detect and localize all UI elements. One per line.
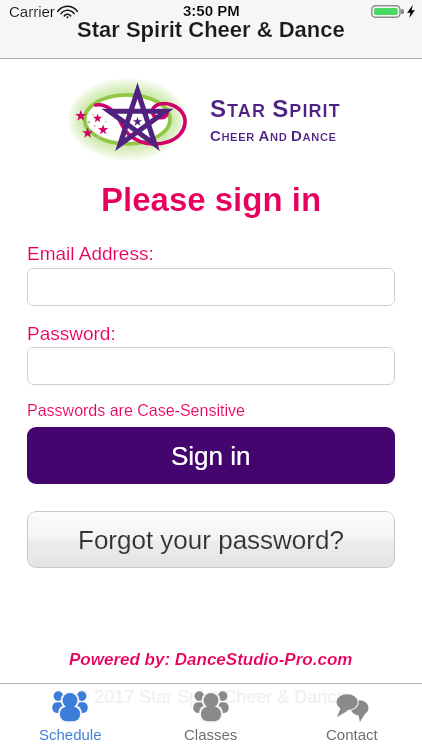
staticText: Email Address:	[27, 243, 154, 264]
button[interactable]: Schedule	[0, 684, 140, 750]
staticText: STAR SPIRIT	[210, 95, 341, 122]
button[interactable]: Text input	[27, 347, 395, 385]
button[interactable]: Text input	[27, 268, 395, 306]
staticText: Powered by: DanceStudio-Pro.com	[69, 650, 353, 669]
staticText: CHEER AND DANCE	[210, 127, 337, 144]
staticText: © 2017 Star Spirit Cheer & Dance	[76, 687, 347, 707]
staticText: Contact	[326, 726, 378, 743]
staticText: Forgot your password?	[78, 525, 344, 554]
staticText: Schedule	[39, 726, 102, 743]
staticText: Star Spirit Cheer & Dance	[77, 17, 345, 42]
button[interactable]: Sign in	[27, 427, 395, 484]
staticText: Sign in	[171, 441, 251, 470]
staticText: Passwords are Case-Sensitive	[27, 402, 245, 420]
staticText: 3:50 PM	[183, 2, 240, 19]
button[interactable]: Classes	[140, 684, 281, 750]
staticText: Password:	[27, 323, 116, 344]
button[interactable]: Contact	[281, 684, 422, 750]
staticText: Please sign in	[101, 181, 322, 218]
button[interactable]: Forgot your password?	[27, 511, 395, 568]
staticText: Classes	[184, 726, 238, 743]
staticText: Carrier	[9, 3, 55, 20]
